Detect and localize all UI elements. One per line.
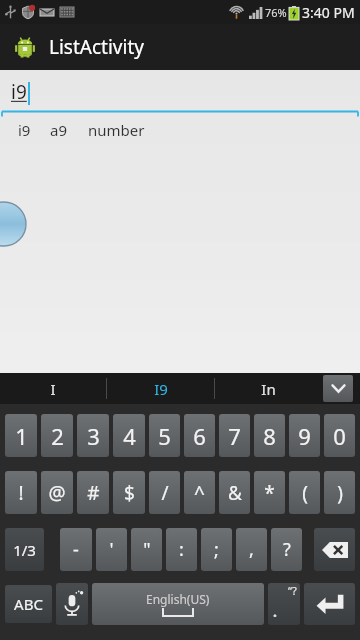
button[interactable]: English(US) <box>92 583 264 625</box>
button[interactable]: I <box>0 373 106 404</box>
staticText: 1/3 <box>13 540 36 560</box>
button[interactable]: ) <box>324 471 355 514</box>
button[interactable]: ^ <box>184 471 215 514</box>
staticText: ListActivity <box>49 34 144 60</box>
staticText: / <box>161 480 169 506</box>
staticText: ^ <box>194 480 205 506</box>
button[interactable]: ? <box>271 528 302 571</box>
staticText: ( <box>302 480 308 506</box>
button[interactable]: $ <box>113 471 145 514</box>
staticText: 4 <box>123 421 136 451</box>
button[interactable]: i9 <box>18 120 31 140</box>
staticText: - <box>73 537 79 562</box>
staticText: 2 <box>51 421 64 451</box>
staticText: 5 <box>158 421 171 451</box>
staticText: ' <box>109 537 114 562</box>
button[interactable]: : <box>166 528 197 571</box>
button[interactable]: - <box>60 528 92 571</box>
button[interactable]: Symbols <box>268 583 300 625</box>
staticText: 9 <box>298 421 311 451</box>
staticText: 0 <box>333 421 346 451</box>
button[interactable]: 7 <box>219 414 250 457</box>
staticText: 3 <box>87 421 100 451</box>
staticText: & <box>228 480 242 506</box>
button[interactable]: 3 <box>77 414 109 457</box>
button[interactable]: Hide suggestions <box>323 375 353 402</box>
staticText: i9 <box>11 79 27 105</box>
button[interactable]: ! <box>5 471 37 514</box>
staticText: " <box>143 537 151 562</box>
staticText: 76% <box>265 5 287 20</box>
staticText: 8 <box>263 421 276 451</box>
button[interactable]: Fast scroll handle <box>0 202 26 246</box>
button[interactable]: 2 <box>41 414 73 457</box>
staticText: In <box>261 379 276 399</box>
button[interactable]: / <box>149 471 180 514</box>
button[interactable]: , <box>236 528 267 571</box>
staticText: # <box>87 480 100 506</box>
staticText: 6 <box>193 421 206 451</box>
button[interactable]: Backspace <box>314 528 355 571</box>
staticText: 1 <box>15 421 28 451</box>
button[interactable]: ( <box>289 471 320 514</box>
staticText: . <box>273 602 277 621</box>
staticText: @ <box>48 480 66 506</box>
staticText: “? <box>288 583 297 598</box>
staticText: * <box>264 480 275 506</box>
button[interactable]: * <box>254 471 285 514</box>
button[interactable]: In <box>215 373 322 404</box>
staticText: ; <box>214 537 219 562</box>
button[interactable]: number <box>88 120 145 140</box>
staticText: I <box>50 379 56 399</box>
button[interactable]: I9 <box>107 373 214 404</box>
staticText: ? <box>283 537 291 562</box>
staticText: English(US) <box>146 591 210 607</box>
staticText: 3:40 PM <box>302 3 355 22</box>
button[interactable]: Enter <box>304 583 355 625</box>
button[interactable]: 1/3 <box>5 528 44 571</box>
button[interactable]: 4 <box>113 414 145 457</box>
staticText: : <box>179 537 184 562</box>
button[interactable]: 1 <box>5 414 37 457</box>
staticText: I9 <box>154 379 168 399</box>
button[interactable]: ' <box>96 528 127 571</box>
button[interactable]: ; <box>201 528 232 571</box>
button[interactable]: 6 <box>184 414 215 457</box>
button[interactable]: 5 <box>149 414 180 457</box>
staticText: ABC <box>14 594 43 614</box>
button[interactable]: " <box>131 528 162 571</box>
button[interactable]: a9 <box>50 120 67 140</box>
button[interactable]: # <box>77 471 109 514</box>
staticText: ! <box>18 480 24 506</box>
staticText: , <box>249 537 254 562</box>
staticText: $ <box>124 480 135 506</box>
button[interactable]: @ <box>41 471 73 514</box>
button[interactable]: ABC <box>5 585 52 623</box>
staticText: ) <box>337 480 343 506</box>
button[interactable]: 0 <box>324 414 355 457</box>
button[interactable]: 9 <box>289 414 320 457</box>
button[interactable]: i9 <box>0 74 360 110</box>
staticText: 7 <box>228 421 241 451</box>
button[interactable]: & <box>219 471 250 514</box>
button[interactable]: 8 <box>254 414 285 457</box>
button[interactable]: Voice input <box>56 583 88 625</box>
